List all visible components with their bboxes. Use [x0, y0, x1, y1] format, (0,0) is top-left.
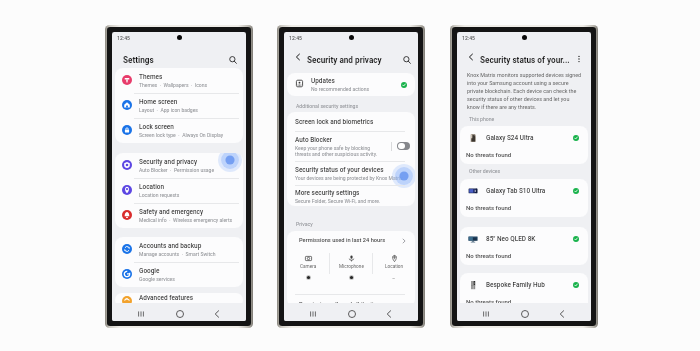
staticText: No threats found	[466, 252, 512, 259]
button[interactable]: Themes	[115, 68, 243, 93]
staticText: 12:45	[117, 35, 130, 41]
staticText: Your devices are being protected by Knox…	[295, 175, 403, 181]
staticText: No threats found	[466, 151, 512, 158]
button[interactable]: Navigate up	[464, 50, 478, 64]
button[interactable]: Security status of your devices	[287, 161, 415, 185]
button[interactable]: Location	[373, 250, 415, 294]
staticText: 12:45	[289, 35, 302, 41]
button[interactable]: Recent apps	[476, 305, 496, 321]
staticText: Location	[385, 264, 404, 270]
button[interactable]: Updates	[287, 73, 415, 96]
staticText: Auto Blocker · Permission usage	[139, 167, 215, 173]
staticText: No threats found	[466, 204, 512, 211]
button[interactable]: Back	[207, 305, 227, 321]
staticText: Security status of your devices	[295, 166, 384, 174]
staticText: Themes	[139, 73, 163, 81]
staticText: Microphone	[339, 264, 364, 270]
staticText: Screen lock type · Always On Display	[139, 132, 224, 138]
staticText: Themes · Wallpapers · Icons	[139, 82, 208, 88]
staticText: into your Samsung account using a secure	[467, 80, 569, 86]
staticText: No threats found	[466, 298, 512, 305]
staticText: private blockchain. Each device can chec…	[467, 88, 577, 94]
staticText: Updates	[311, 77, 335, 85]
button[interactable]: Google	[115, 262, 243, 287]
staticText: Security and privacy	[307, 55, 382, 65]
staticText: Keep your phone safe by blocking	[295, 145, 371, 151]
button[interactable]: Permissions used in last 24 hours	[287, 231, 415, 250]
button[interactable]: Safety and emergency	[115, 203, 243, 228]
staticText: This phone	[469, 116, 495, 122]
staticText: Home screen	[139, 98, 178, 106]
staticText: Manage accounts · Smart Switch	[139, 251, 216, 257]
button[interactable]: Auto Blocker toggle	[397, 142, 410, 150]
button[interactable]: Accounts and backup	[115, 237, 243, 262]
button[interactable]: Screen lock and biometrics	[287, 112, 415, 131]
staticText: Safety and emergency	[139, 208, 204, 216]
staticText: threats and other suspicious activity.	[295, 151, 378, 157]
staticText: 12:45	[462, 35, 475, 41]
button[interactable]: Search	[399, 52, 414, 67]
staticText: security status of other devices and let…	[467, 96, 570, 102]
staticText: Auto Blocker	[295, 136, 332, 144]
button[interactable]: More options	[572, 52, 586, 66]
button[interactable]: Home	[515, 305, 535, 321]
button[interactable]: Galaxy Tab S10 Ultra	[460, 179, 588, 217]
staticText: More security settings	[295, 189, 360, 197]
button[interactable]: Navigate up	[291, 50, 305, 64]
staticText: Other devices	[469, 168, 501, 174]
button[interactable]: Recent apps	[303, 305, 323, 321]
button[interactable]: Camera	[287, 250, 329, 294]
button[interactable]: Permissions allowed all the time	[287, 294, 415, 307]
button[interactable]: Recent apps	[131, 305, 151, 321]
button[interactable]: More security settings	[287, 185, 415, 206]
staticText: Settings	[123, 55, 154, 65]
button[interactable]: Home	[170, 305, 190, 321]
button[interactable]: Security and privacy	[115, 153, 243, 178]
button[interactable]: Lock screen	[115, 118, 243, 143]
staticText: Knox Matrix monitors supported devices s…	[467, 72, 582, 78]
staticText: Google	[139, 267, 160, 275]
staticText: know if there are any threats.	[467, 104, 537, 110]
button[interactable]: Galaxy S24 Ultra	[460, 126, 588, 164]
staticText: Additional security settings	[296, 103, 359, 109]
button[interactable]: Microphone	[330, 250, 372, 294]
staticText: Lock screen	[139, 123, 174, 131]
staticText: –	[392, 275, 396, 281]
staticText: Google services	[139, 276, 175, 282]
button[interactable]: Bespoke Family Hub	[460, 273, 588, 311]
staticText: Privacy	[296, 221, 313, 227]
staticText: Screen lock and biometrics	[295, 118, 374, 126]
button[interactable]: Back	[552, 305, 572, 321]
staticText: Accounts and backup	[139, 242, 202, 250]
staticText: Bespoke Family Hub	[486, 281, 573, 289]
button[interactable]: Advanced features	[115, 293, 243, 307]
staticText: Location requests	[139, 192, 180, 198]
staticText: Permissions allowed all the time	[299, 301, 382, 307]
staticText: 85" Neo QLED 8K	[486, 235, 573, 243]
button[interactable]: Home	[342, 305, 362, 321]
staticText: Security status of your...	[480, 55, 570, 65]
staticText: Location	[139, 183, 165, 191]
staticText: Galaxy Tab S10 Ultra	[486, 187, 573, 195]
button[interactable]: Back	[379, 305, 399, 321]
staticText: No recommended actions	[311, 86, 370, 92]
button[interactable]: Location	[115, 178, 243, 203]
button[interactable]: Auto Blocker	[287, 131, 415, 161]
staticText: Camera	[300, 264, 317, 270]
staticText: Galaxy S24 Ultra	[486, 134, 573, 142]
staticText: Secure Folder, Secure Wi-Fi, and more.	[295, 198, 381, 204]
button[interactable]: 85" Neo QLED 8K	[460, 227, 588, 265]
staticText: Layout · App icon badges	[139, 107, 198, 113]
button[interactable]: Search	[225, 52, 240, 67]
staticText: Permissions used in last 24 hours	[299, 237, 401, 244]
button[interactable]: Home screen	[115, 93, 243, 118]
staticText: Medical info · Wireless emergency alerts	[139, 217, 233, 223]
staticText: Advanced features	[139, 294, 194, 302]
staticText: Security and privacy	[139, 158, 198, 166]
